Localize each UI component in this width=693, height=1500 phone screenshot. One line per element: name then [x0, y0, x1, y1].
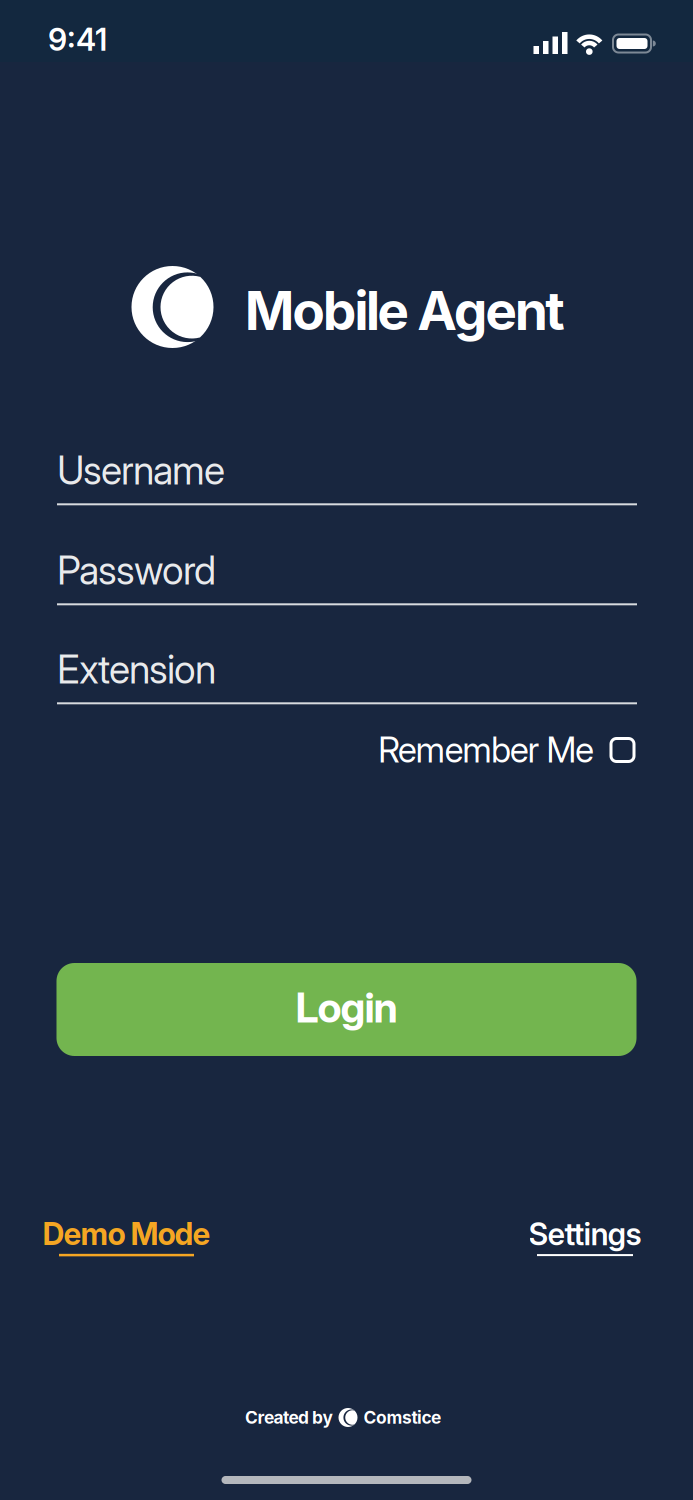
- staticText: Login: [295, 983, 397, 1032]
- staticText: Mobile Agent: [245, 279, 565, 342]
- staticText: Extension: [57, 647, 216, 692]
- staticText: Settings: [528, 1216, 641, 1252]
- staticText: 9:41: [48, 21, 107, 58]
- button[interactable]: Demo Mode: [42, 1216, 210, 1256]
- staticText: Comstice: [363, 1407, 441, 1428]
- staticText: Password: [57, 548, 216, 593]
- staticText: Username: [57, 448, 225, 493]
- staticText: Remember Me: [378, 730, 594, 770]
- staticText: Demo Mode: [42, 1216, 210, 1252]
- button[interactable]: Settings: [528, 1216, 641, 1256]
- button[interactable]: Remember Me: [0, 730, 693, 770]
- button[interactable]: Extension: [57, 647, 637, 704]
- button[interactable]: Username: [57, 448, 637, 505]
- button[interactable]: Password: [57, 548, 637, 605]
- staticText: Created by: [245, 1407, 332, 1428]
- button[interactable]: Login: [56, 963, 636, 1056]
